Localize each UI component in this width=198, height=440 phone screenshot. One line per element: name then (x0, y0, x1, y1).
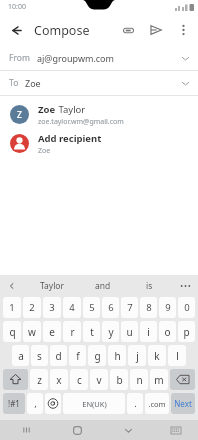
button[interactable]: Attach file (114, 16, 142, 44)
button[interactable]: 0 (178, 297, 195, 318)
staticText: zoe.taylor.wm@gmail.com (38, 117, 124, 127)
button[interactable]: q (3, 321, 21, 342)
button[interactable]: r (63, 321, 81, 342)
button[interactable]: Z (0, 100, 198, 129)
staticText: Zoe (38, 146, 51, 156)
button[interactable]: f (69, 345, 86, 366)
button[interactable]: 9 (159, 297, 176, 318)
staticText: z (37, 373, 42, 387)
button[interactable]: 6 (102, 297, 119, 318)
button[interactable]: j (128, 345, 146, 366)
button[interactable]: b (110, 369, 128, 390)
button[interactable]: k (148, 345, 166, 366)
button[interactable]: More suggestions (172, 275, 198, 297)
staticText: 10:00 (8, 2, 26, 12)
button[interactable]: At sign (45, 393, 61, 414)
button[interactable]: 2 (23, 297, 41, 318)
button[interactable]: 1 (3, 297, 21, 318)
staticText: EN(UK) (82, 399, 107, 409)
button[interactable]: v (90, 369, 108, 390)
button[interactable]: , (27, 393, 43, 414)
staticText: .com (148, 399, 166, 409)
button[interactable]: t (83, 321, 100, 342)
staticText: aj@groupwm.com (37, 52, 114, 64)
button[interactable]: Taylor (24, 275, 80, 297)
staticText: k (154, 349, 160, 363)
button[interactable]: h (108, 345, 126, 366)
button[interactable]: 3 (43, 297, 61, 318)
staticText: To (9, 77, 19, 89)
button[interactable]: To (0, 71, 198, 95)
button[interactable]: EN(UK) (63, 393, 125, 414)
staticText: Taylor (56, 103, 86, 116)
staticText: y (108, 325, 114, 339)
staticText: Zoe (38, 103, 56, 116)
button[interactable]: Previous suggestions (0, 275, 24, 297)
button[interactable]: x (50, 369, 68, 390)
button[interactable]: 4 (63, 297, 81, 318)
button[interactable]: p (178, 321, 195, 342)
staticText: 7 (127, 301, 133, 314)
button[interactable]: y (102, 321, 119, 342)
button[interactable]: !#1 (3, 393, 25, 414)
staticText: 6 (108, 301, 114, 314)
button[interactable]: Back (0, 14, 32, 46)
button[interactable]: Shift (3, 369, 28, 390)
button[interactable]: Next (171, 393, 195, 414)
button[interactable]: c (70, 369, 88, 390)
button[interactable]: e (43, 321, 61, 342)
staticText: g (94, 349, 101, 363)
button[interactable]: . (127, 393, 143, 414)
button[interactable]: 8 (140, 297, 157, 318)
button[interactable]: Send (142, 16, 170, 44)
staticText: d (55, 349, 62, 363)
staticText: , (34, 397, 37, 410)
button[interactable]: o (159, 321, 176, 342)
button[interactable]: g (88, 345, 106, 366)
button[interactable]: From (0, 46, 198, 70)
button[interactable]: is (126, 275, 172, 297)
button[interactable]: w (23, 321, 41, 342)
staticText: . (134, 397, 137, 410)
staticText: r (70, 325, 75, 339)
staticText: s (37, 349, 42, 363)
staticText: 2 (29, 301, 35, 314)
button[interactable]: n (130, 369, 148, 390)
staticText: p (183, 325, 190, 339)
button[interactable]: Backspace (170, 369, 195, 390)
staticText: Z (17, 109, 22, 121)
staticText: and (95, 280, 111, 292)
staticText: 3 (49, 301, 55, 314)
button[interactable]: a (12, 345, 29, 366)
staticText: 9 (165, 301, 171, 314)
staticText: 1 (9, 301, 15, 314)
staticText: u (126, 325, 133, 339)
button[interactable]: d (50, 345, 67, 366)
button[interactable]: i (140, 321, 157, 342)
button[interactable]: Hide keyboard (103, 420, 154, 440)
button[interactable]: m (150, 369, 168, 390)
staticText: Taylor (40, 280, 64, 292)
staticText: 8 (146, 301, 152, 314)
button[interactable]: and (80, 275, 126, 297)
button[interactable]: 5 (83, 297, 100, 318)
staticText: b (116, 373, 123, 387)
button[interactable]: l (168, 345, 186, 366)
staticText: j (136, 349, 139, 363)
button[interactable]: Home (52, 420, 103, 440)
button[interactable]: .com (145, 393, 169, 414)
button[interactable]: z (30, 369, 48, 390)
button[interactable]: s (31, 345, 48, 366)
staticText: !#1 (8, 398, 20, 409)
staticText: n (136, 373, 143, 387)
button[interactable]: More options (170, 17, 196, 43)
staticText: l (176, 349, 179, 363)
button[interactable]: u (121, 321, 138, 342)
button[interactable]: Add recipient (0, 129, 198, 158)
button[interactable]: 7 (121, 297, 138, 318)
button[interactable]: Recents (0, 420, 52, 440)
staticText: a (18, 349, 24, 363)
staticText: x (56, 373, 62, 387)
staticText: t (90, 325, 94, 339)
button[interactable]: Change keyboard (154, 420, 198, 440)
